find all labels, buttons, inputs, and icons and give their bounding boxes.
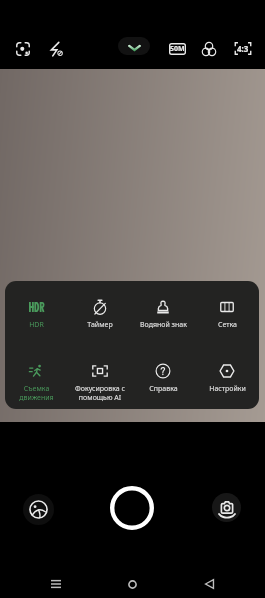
button[interactable]: HDR [5, 281, 68, 345]
button[interactable]: Таймер [68, 281, 131, 345]
staticText: Настройки [209, 384, 246, 394]
button[interactable]: Flash off [44, 37, 67, 60]
button[interactable]: Home [122, 574, 142, 594]
button[interactable]: Сетка [195, 281, 259, 345]
button[interactable]: Gallery [23, 494, 54, 525]
staticText: Фокусировка с помощью AI [75, 384, 125, 402]
button[interactable]: 50 megapixel [166, 37, 189, 60]
button[interactable]: Recent apps [46, 574, 66, 594]
staticText: 50M [170, 44, 185, 54]
button[interactable]: Switch camera [212, 493, 241, 522]
button[interactable]: Expand options [118, 37, 150, 55]
staticText: 4:3 [237, 43, 249, 54]
staticText: Сетка [218, 320, 237, 330]
button[interactable]: Colour filters [197, 37, 220, 60]
button[interactable]: Back [199, 574, 219, 594]
button[interactable]: Съемка движения [5, 345, 68, 409]
staticText: Таймер [87, 320, 113, 330]
button[interactable]: Фокусировка с помощью AI [68, 345, 131, 409]
button[interactable]: Lens scan [11, 37, 34, 60]
button[interactable]: Настройки [195, 345, 259, 409]
button[interactable]: Справка [131, 345, 195, 409]
staticText: Съемка движения [19, 384, 54, 402]
button[interactable]: Aspect ratio 4 by 3 [231, 37, 254, 60]
staticText: Водяной знак [140, 320, 187, 330]
button[interactable]: Водяной знак [131, 281, 195, 345]
staticText: Справка [149, 384, 178, 394]
button[interactable]: Take photo [106, 482, 158, 534]
staticText: HDR [29, 320, 44, 330]
